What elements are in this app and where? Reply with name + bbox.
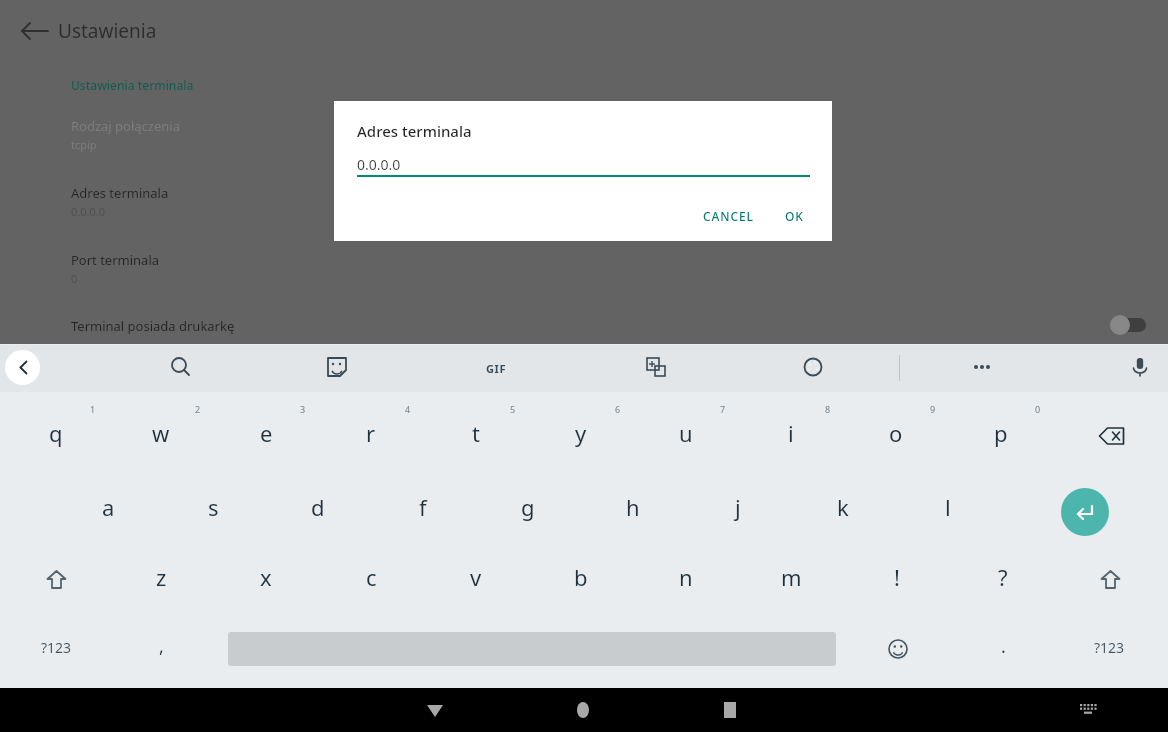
button[interactable] xyxy=(951,616,1056,682)
staticText: Rodzaj połączenia xyxy=(71,117,180,135)
button[interactable] xyxy=(1057,616,1162,682)
button[interactable] xyxy=(371,476,476,548)
button[interactable] xyxy=(214,543,319,615)
staticText: v xyxy=(470,562,482,592)
staticText: b xyxy=(574,562,588,592)
staticText: 7 xyxy=(720,403,726,415)
button[interactable]: Terminal posiada drukarkę toggle xyxy=(1104,310,1156,340)
button[interactable] xyxy=(60,180,1100,236)
button[interactable] xyxy=(686,476,791,548)
button[interactable] xyxy=(214,398,319,470)
staticText: , xyxy=(159,634,164,659)
button[interactable] xyxy=(60,312,1160,352)
staticText: d xyxy=(311,492,325,522)
button[interactable] xyxy=(529,398,634,470)
button[interactable]: Recent apps xyxy=(706,688,754,732)
staticText: ! xyxy=(894,562,900,592)
button[interactable]: Voice input xyxy=(1118,345,1162,389)
staticText: 0 xyxy=(1035,403,1041,415)
button[interactable]: Shift xyxy=(4,543,109,615)
staticText: a xyxy=(102,492,115,522)
staticText: GIF xyxy=(486,361,507,376)
button[interactable]: Shift xyxy=(1058,543,1163,615)
staticText: 4 xyxy=(405,403,411,415)
button[interactable] xyxy=(319,398,424,470)
button[interactable]: OK xyxy=(772,200,816,232)
button[interactable] xyxy=(60,110,1100,166)
button[interactable]: Backspace xyxy=(1059,398,1164,470)
button[interactable]: Back xyxy=(411,688,459,732)
button[interactable] xyxy=(4,616,109,682)
staticText: k xyxy=(837,492,849,522)
staticText: 1 xyxy=(90,403,96,415)
staticText: ?123 xyxy=(1094,638,1125,657)
button[interactable] xyxy=(56,476,161,548)
staticText: n xyxy=(679,562,693,592)
button[interactable] xyxy=(844,398,949,470)
staticText: . xyxy=(1001,634,1006,659)
button[interactable] xyxy=(581,476,686,548)
staticText: h xyxy=(626,492,640,522)
button[interactable]: Back xyxy=(5,350,40,385)
staticText: c xyxy=(366,562,377,592)
staticText: t xyxy=(472,418,480,448)
button[interactable] xyxy=(109,616,214,682)
staticText: Adres terminala xyxy=(357,121,472,141)
staticText: Terminal posiada drukarkę xyxy=(71,317,235,335)
staticText: z xyxy=(156,562,167,592)
button[interactable] xyxy=(791,476,896,548)
button[interactable]: More options xyxy=(960,345,1004,389)
staticText: 8 xyxy=(825,403,831,415)
button[interactable] xyxy=(739,543,844,615)
button[interactable]: GIF xyxy=(474,355,518,381)
button[interactable]: Enter xyxy=(1032,476,1137,548)
staticText: Port terminala xyxy=(71,251,160,269)
button[interactable] xyxy=(161,476,266,548)
button[interactable] xyxy=(634,543,739,615)
staticText: ? xyxy=(998,562,1008,592)
staticText: 0 xyxy=(71,271,78,286)
button[interactable] xyxy=(949,398,1054,470)
button[interactable] xyxy=(109,398,214,470)
staticText: 0.0.0.0 xyxy=(357,155,401,174)
staticText: q xyxy=(49,418,63,448)
button[interactable] xyxy=(951,543,1056,615)
button[interactable] xyxy=(634,398,739,470)
staticText: y xyxy=(575,418,587,448)
staticText: i xyxy=(788,418,794,448)
button[interactable] xyxy=(529,543,634,615)
button[interactable] xyxy=(476,476,581,548)
staticText: ?123 xyxy=(41,638,72,657)
staticText: Ustawienia terminala xyxy=(71,77,194,93)
staticText: w xyxy=(152,418,170,448)
staticText: 0.0.0.0 xyxy=(71,204,106,219)
staticText: 2 xyxy=(195,403,201,415)
button[interactable] xyxy=(424,543,529,615)
button[interactable] xyxy=(4,398,109,470)
staticText: r xyxy=(366,418,376,448)
staticText: 5 xyxy=(510,403,516,415)
button[interactable] xyxy=(739,398,844,470)
staticText: e xyxy=(260,418,273,448)
button[interactable]: Home xyxy=(559,688,607,732)
button[interactable]: Back xyxy=(18,14,52,48)
button[interactable] xyxy=(896,476,1001,548)
button[interactable] xyxy=(845,543,950,615)
button[interactable]: Translate xyxy=(634,345,678,389)
button[interactable]: Switch keyboard xyxy=(1064,688,1112,732)
staticText: tcpip xyxy=(71,137,97,152)
button[interactable] xyxy=(424,398,529,470)
button[interactable]: Search xyxy=(159,345,203,389)
staticText: p xyxy=(994,418,1008,448)
staticText: l xyxy=(945,492,951,522)
button[interactable] xyxy=(266,476,371,548)
button[interactable] xyxy=(109,543,214,615)
button[interactable] xyxy=(319,543,424,615)
button[interactable]: CANCEL xyxy=(690,200,766,232)
button[interactable]: Stickers xyxy=(315,345,359,389)
button[interactable]: Emoji xyxy=(845,616,950,682)
button[interactable]: Theme xyxy=(791,345,835,389)
staticText: o xyxy=(889,418,903,448)
